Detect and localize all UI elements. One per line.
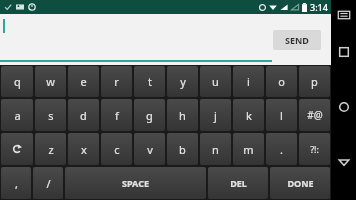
button[interactable]: i — [233, 66, 264, 97]
staticText: k — [246, 108, 252, 123]
button[interactable]: b — [167, 133, 198, 165]
staticText: i — [247, 74, 250, 89]
button[interactable]: Back — [331, 149, 356, 174]
button[interactable]: DONE — [270, 167, 330, 199]
button[interactable]: k — [233, 99, 264, 131]
staticText: r — [114, 74, 119, 89]
staticText: . — [280, 142, 283, 157]
staticText: z — [48, 142, 54, 157]
button[interactable]: z — [35, 133, 66, 165]
button[interactable]: x — [68, 133, 99, 165]
button[interactable]: , — [1, 167, 31, 199]
button[interactable]: Shift — [1, 133, 33, 165]
staticText: DEL — [230, 177, 247, 189]
button[interactable]: d — [68, 99, 99, 131]
staticText: m — [243, 142, 254, 157]
staticText: n — [212, 142, 219, 157]
button[interactable]: f — [101, 99, 132, 131]
button[interactable]: c — [101, 133, 132, 165]
button[interactable]: u — [200, 66, 231, 97]
staticText: DONE — [287, 177, 314, 189]
button[interactable]: g — [134, 99, 165, 131]
button[interactable]: e — [68, 66, 99, 97]
button[interactable]: q — [1, 66, 33, 97]
staticText: p — [311, 74, 318, 89]
button[interactable]: ?!: — [299, 133, 330, 165]
button[interactable]: j — [200, 99, 231, 131]
button[interactable]: a — [1, 99, 33, 131]
button[interactable]: #@ — [299, 99, 330, 131]
button[interactable]: m — [233, 133, 264, 165]
staticText: b — [179, 142, 186, 157]
staticText: / — [46, 176, 51, 191]
button[interactable]: l — [266, 99, 297, 131]
button[interactable]: v — [134, 133, 165, 165]
button[interactable]: . — [266, 133, 297, 165]
button[interactable]: p — [299, 66, 330, 97]
staticText: a — [14, 108, 21, 123]
staticText: f — [115, 108, 119, 123]
staticText: d — [80, 108, 87, 123]
button[interactable]: h — [167, 99, 198, 131]
staticText: c — [114, 142, 120, 157]
button[interactable]: / — [33, 167, 63, 199]
staticText: h — [179, 108, 186, 123]
button[interactable]: SEND — [273, 30, 321, 50]
staticText: t — [148, 74, 152, 89]
button[interactable]: t — [134, 66, 165, 97]
staticText: e — [80, 74, 87, 89]
button[interactable]: SPACE — [65, 167, 206, 199]
button[interactable]: Hide keyboard — [331, 2, 356, 27]
staticText: s — [48, 108, 54, 123]
button[interactable]: w — [35, 66, 66, 97]
staticText: SPACE — [122, 177, 149, 189]
staticText: v — [147, 142, 153, 157]
staticText: u — [212, 74, 219, 89]
staticText: w — [46, 74, 55, 89]
staticText: 3:14 — [310, 1, 328, 13]
button[interactable]: DEL — [208, 167, 268, 199]
button[interactable]: Home — [331, 94, 356, 119]
staticText: y — [180, 74, 186, 89]
staticText: ?!: — [310, 143, 319, 155]
button[interactable]: SEND — [0, 14, 331, 65]
button[interactable]: y — [167, 66, 198, 97]
staticText: o — [278, 74, 285, 89]
staticText: q — [14, 74, 21, 89]
staticText: , — [15, 176, 18, 191]
staticText: g — [146, 108, 153, 123]
staticText: j — [214, 108, 217, 123]
staticText: SEND — [285, 34, 309, 46]
button[interactable]: o — [266, 66, 297, 97]
staticText: x — [81, 142, 87, 157]
staticText: #@ — [307, 108, 323, 122]
staticText: l — [280, 108, 283, 123]
button[interactable]: n — [200, 133, 231, 165]
button[interactable]: Recents — [331, 39, 356, 64]
button[interactable]: r — [101, 66, 132, 97]
button[interactable]: s — [35, 99, 66, 131]
